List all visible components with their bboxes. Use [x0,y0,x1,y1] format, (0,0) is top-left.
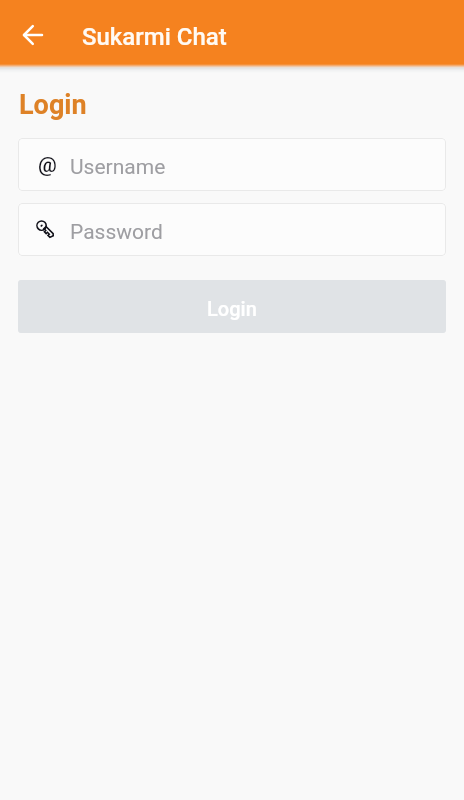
button[interactable]: Back [15,17,51,53]
button[interactable]: Username [18,138,446,191]
button[interactable]: Login [18,280,446,333]
staticText: Login [19,89,87,121]
button[interactable]: Password [18,203,446,256]
staticText: Password [70,220,163,245]
staticText: Username [70,155,166,180]
staticText: @ [38,153,57,178]
staticText: Login [207,297,257,320]
staticText: Sukarmi Chat [82,23,227,51]
